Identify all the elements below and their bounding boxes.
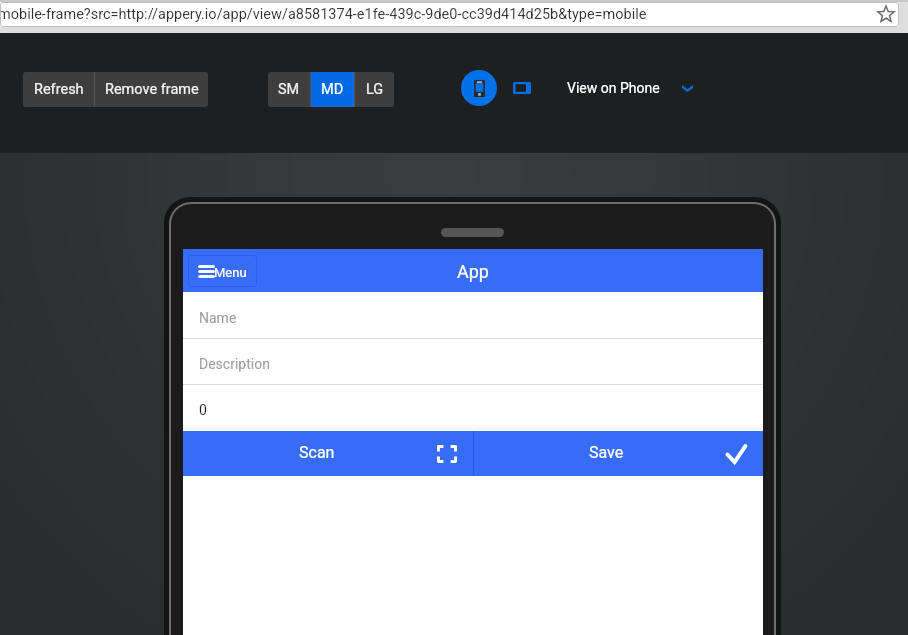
button[interactable]: SM — [268, 72, 310, 107]
staticText: Description — [199, 356, 270, 372]
staticText: View on Phone — [567, 80, 660, 96]
button[interactable]: Save — [474, 431, 763, 476]
staticText: Refresh — [34, 81, 84, 98]
staticText: 0 — [199, 402, 207, 418]
staticText: MD — [321, 81, 344, 98]
button[interactable]: Menu — [188, 255, 257, 287]
staticText: Menu — [214, 265, 247, 280]
button[interactable]: Bookmark — [877, 5, 895, 23]
button[interactable]: Tablet preview — [513, 82, 531, 94]
staticText: mobile-frame?src=http://appery.io/app/vi… — [0, 6, 647, 23]
staticText: App — [457, 261, 489, 282]
button[interactable]: Scan — [183, 431, 473, 476]
staticText: Remove frame — [105, 81, 199, 98]
button[interactable]: View on Phone — [567, 73, 693, 103]
button[interactable]: Phone preview — [461, 70, 497, 106]
staticText: Save — [589, 443, 624, 462]
button[interactable]: LG — [355, 72, 394, 107]
button[interactable]: 0 — [183, 385, 763, 431]
button[interactable]: Remove frame — [95, 72, 208, 107]
button[interactable]: Description — [183, 339, 763, 385]
button[interactable]: Refresh — [23, 72, 94, 107]
staticText: Scan — [299, 443, 335, 462]
button[interactable]: MD — [311, 72, 354, 107]
staticText: SM — [278, 81, 300, 98]
staticText: Name — [199, 310, 237, 326]
staticText: LG — [366, 81, 384, 98]
button[interactable]: Name — [183, 292, 763, 339]
